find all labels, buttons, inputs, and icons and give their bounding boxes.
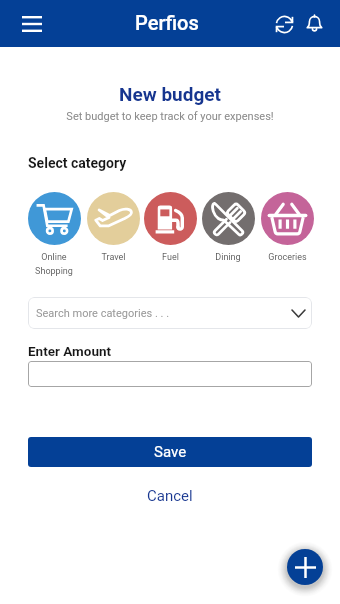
button[interactable]: Dining [197, 192, 259, 263]
button[interactable]: Sync [268, 8, 300, 40]
staticText: Fuel [162, 252, 179, 263]
staticText: Online Shopping [35, 252, 73, 276]
button[interactable]: Search more categories . . . [28, 297, 312, 329]
staticText: Search more categories . . . [36, 307, 170, 320]
button[interactable]: Cancel [133, 484, 207, 508]
button[interactable] [28, 361, 312, 387]
button[interactable]: Save [28, 437, 312, 467]
button[interactable]: Notifications [298, 7, 330, 39]
staticText: Travel [101, 252, 126, 263]
staticText: Set budget to keep track of your expense… [0, 110, 340, 123]
staticText: Save [154, 443, 187, 461]
staticText: New budget [0, 83, 340, 105]
staticText: Dining [215, 252, 241, 263]
button[interactable]: Groceries [256, 192, 318, 263]
button[interactable]: Online Shopping [23, 192, 85, 276]
button[interactable]: Fuel [139, 192, 201, 263]
button[interactable]: Travel [82, 192, 144, 263]
button[interactable]: Menu [14, 6, 50, 42]
staticText: Cancel [147, 487, 193, 505]
staticText: Enter Amount [28, 343, 112, 359]
staticText: Perfios [135, 11, 199, 34]
staticText: Groceries [268, 252, 307, 263]
staticText: Select category [28, 155, 127, 171]
button[interactable]: Add [287, 549, 323, 585]
